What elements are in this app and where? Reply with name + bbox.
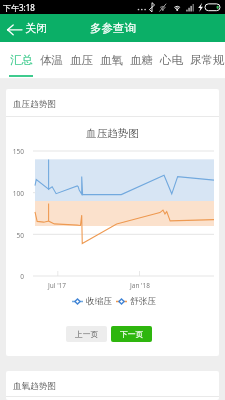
staticText: 汇总 [10,53,33,67]
staticText: 尿常规 [190,53,225,67]
staticText: 血氧 [100,53,123,67]
staticText: 心电 [160,53,183,67]
staticText: 血压 [70,53,93,67]
staticText: Jul '17 [45,281,69,290]
button[interactable]: 下一页 [111,326,152,342]
staticText: 血氧趋势图 [13,381,56,392]
staticText: Jan '18 [128,281,152,290]
button[interactable]: 收缩压 [72,296,113,307]
staticText: 100 [8,189,24,198]
staticText: 0 [8,272,24,281]
staticText: 下一页 [120,329,144,339]
staticText: 下午3:18 [3,2,35,13]
staticText: 50 [8,231,24,240]
button[interactable]: 舒张压 [116,296,157,307]
staticText: 血糖 [130,53,153,67]
staticText: 上一页 [75,329,99,339]
button[interactable]: 尿常规 [190,42,225,79]
staticText: 血压趋势图 [13,99,56,110]
button[interactable]: 关闭 [0,14,52,42]
staticText: 血压趋势图 [6,127,219,140]
button[interactable]: 体温 [40,42,63,79]
staticText: 关闭 [25,21,47,35]
button[interactable]: 心电 [160,42,183,79]
button[interactable]: 汇总 [9,42,33,79]
button[interactable]: 血糖 [130,42,153,79]
staticText: 舒张压 [130,296,157,307]
staticText: 多参查询 [90,21,136,35]
staticText: 150 [8,147,24,156]
button[interactable]: 血氧 [100,42,123,79]
button[interactable]: 上一页 [66,326,107,342]
staticText: 收缩压 [86,296,113,307]
button[interactable]: 血压 [70,42,93,79]
staticText: 体温 [40,53,63,67]
